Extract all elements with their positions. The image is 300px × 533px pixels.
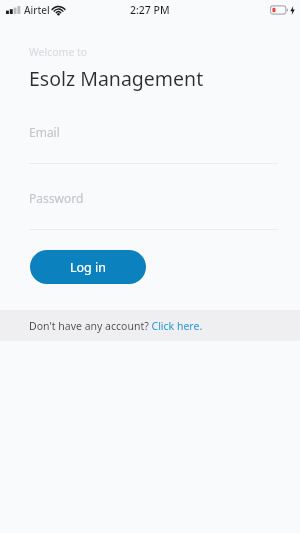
button[interactable]: Log in	[30, 250, 146, 284]
staticText: Password	[29, 190, 84, 206]
button[interactable]: Email	[0, 122, 300, 164]
button[interactable]: Don't have any account? Click here.	[0, 310, 300, 341]
staticText: Airtel	[24, 3, 50, 17]
staticText: Esolz Management	[29, 65, 204, 92]
staticText: Welcome to	[29, 45, 88, 59]
staticText: Log in	[70, 259, 107, 276]
staticText: Don't have any account? Click here.	[29, 319, 203, 333]
staticText: 2:27 PM	[130, 3, 170, 17]
staticText: Email	[29, 124, 60, 140]
button[interactable]: Password	[0, 188, 300, 230]
